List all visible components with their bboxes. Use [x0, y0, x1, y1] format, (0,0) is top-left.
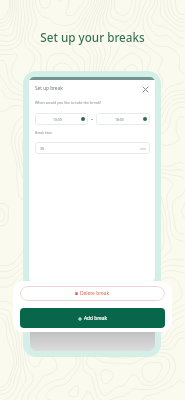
staticText: 30 — [40, 146, 45, 151]
staticText: Delete break — [80, 290, 110, 297]
button[interactable]: Add break — [20, 308, 165, 328]
staticText: Set up your breaks — [0, 29, 185, 45]
staticText: Set up break — [35, 85, 63, 91]
button[interactable]: Delete break — [20, 286, 165, 301]
staticText: Break time — [35, 130, 52, 134]
button[interactable]: 30 — [35, 142, 150, 154]
staticText: min — [140, 146, 146, 150]
button[interactable]: 10:00 — [35, 113, 88, 125]
staticText: 10:00 — [53, 117, 62, 122]
button[interactable]: Close — [139, 83, 151, 95]
button[interactable]: 18:00 — [96, 113, 150, 125]
staticText: Add break — [84, 315, 108, 322]
staticText: 18:00 — [115, 117, 124, 122]
staticText: When would you like to take the break? — [35, 100, 102, 105]
